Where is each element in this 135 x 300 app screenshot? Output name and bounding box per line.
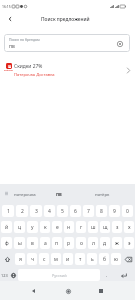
button[interactable]: ф xyxy=(1,237,12,249)
staticText: 16:15 xyxy=(2,4,11,9)
staticText: ц xyxy=(18,224,22,231)
button[interactable]: 8 xyxy=(96,205,107,217)
staticText: з xyxy=(116,224,119,231)
staticText: ПЯТЁРОЧКА xyxy=(4,69,14,71)
staticText: Скидки 27% xyxy=(14,63,43,70)
button[interactable]: 3 xyxy=(30,205,42,217)
staticText: 9 xyxy=(113,208,116,215)
button[interactable]: 1 xyxy=(2,205,14,217)
staticText: ш xyxy=(91,224,96,231)
button[interactable]: б xyxy=(99,253,109,265)
button[interactable]: 7 xyxy=(83,205,94,217)
staticText: б xyxy=(103,256,106,263)
staticText: м xyxy=(54,256,58,263)
staticText: 0 xyxy=(126,208,129,215)
button[interactable]: о xyxy=(76,237,86,249)
staticText: г xyxy=(80,224,83,231)
button[interactable]: Numbers xyxy=(0,267,9,283)
staticText: 5 xyxy=(61,208,64,215)
button[interactable]: п xyxy=(52,237,62,249)
staticText: пятёрк xyxy=(95,191,110,197)
button[interactable]: р xyxy=(64,237,74,249)
button[interactable]: пв xyxy=(38,184,79,203)
staticText: ы xyxy=(18,240,22,247)
staticText: е xyxy=(56,224,59,231)
staticText: й xyxy=(5,224,9,231)
staticText: 4 xyxy=(48,208,51,215)
button[interactable]: Keyboard menu xyxy=(0,184,12,203)
staticText: э xyxy=(128,240,131,247)
button[interactable]: Back xyxy=(1,10,18,27)
staticText: Поиск предложений xyxy=(41,16,90,23)
staticText: Русский xyxy=(52,273,67,278)
button[interactable]: ПЯТЁРОЧКА xyxy=(0,59,135,81)
button[interactable]: ц xyxy=(14,221,25,233)
staticText: пятерочка xyxy=(14,191,36,197)
staticText: 8 xyxy=(100,208,103,215)
staticText: л xyxy=(92,240,95,247)
button[interactable]: Поиск по брендам xyxy=(4,34,130,52)
staticText: п xyxy=(55,240,59,247)
button[interactable]: Recent apps xyxy=(93,283,109,299)
button[interactable]: 0 xyxy=(122,205,133,217)
button[interactable]: в xyxy=(27,237,38,249)
button[interactable]: ж xyxy=(112,237,122,249)
button[interactable]: ю xyxy=(111,253,121,265)
button[interactable]: Backspace xyxy=(122,251,135,267)
staticText: д xyxy=(103,240,107,247)
staticText: . xyxy=(106,272,108,278)
staticText: Поиск по брендам xyxy=(9,37,40,42)
staticText: пв xyxy=(9,43,15,50)
button[interactable]: Back xyxy=(25,283,41,299)
button[interactable]: д xyxy=(100,237,110,249)
button[interactable]: л xyxy=(88,237,98,249)
staticText: в xyxy=(31,240,34,247)
staticText: у xyxy=(31,224,34,231)
button[interactable]: н xyxy=(64,221,74,233)
staticText: 6 xyxy=(74,208,77,215)
button[interactable]: э xyxy=(124,237,134,249)
button[interactable]: Enter xyxy=(112,267,135,283)
button[interactable]: пятёрк xyxy=(79,184,125,203)
button[interactable]: ч xyxy=(27,253,37,265)
button[interactable]: й xyxy=(1,221,12,233)
staticText: пв xyxy=(56,191,62,197)
button[interactable]: 2 xyxy=(16,205,28,217)
button[interactable]: 5 xyxy=(57,205,68,217)
staticText: щ xyxy=(103,224,108,231)
staticText: р xyxy=(67,240,71,247)
button[interactable]: ь xyxy=(87,253,97,265)
button[interactable]: 4 xyxy=(44,205,55,217)
button[interactable]: х xyxy=(124,221,134,233)
button[interactable]: 6 xyxy=(70,205,81,217)
button[interactable]: т xyxy=(75,253,85,265)
staticText: х xyxy=(128,224,131,231)
button[interactable]: Period xyxy=(101,267,112,283)
button[interactable]: щ xyxy=(100,221,110,233)
button[interactable]: г xyxy=(76,221,86,233)
staticText: н xyxy=(67,224,71,231)
button[interactable]: е xyxy=(52,221,62,233)
staticText: к xyxy=(44,224,47,231)
button[interactable]: ы xyxy=(14,237,25,249)
staticText: 7 xyxy=(87,208,90,215)
button[interactable]: к xyxy=(40,221,50,233)
button[interactable]: я xyxy=(15,253,25,265)
button[interactable]: м xyxy=(51,253,61,265)
button[interactable]: у xyxy=(27,221,38,233)
staticText: я xyxy=(19,256,22,263)
staticText: ч xyxy=(31,256,34,263)
button[interactable]: Clear text xyxy=(115,39,124,48)
staticText: о xyxy=(80,240,83,247)
button[interactable]: и xyxy=(63,253,73,265)
button[interactable]: 9 xyxy=(109,205,120,217)
button[interactable]: с xyxy=(39,253,49,265)
button[interactable]: ш xyxy=(88,221,98,233)
button[interactable]: Change language xyxy=(9,267,17,283)
button[interactable]: Русский xyxy=(18,269,100,281)
button[interactable]: Home xyxy=(60,283,76,299)
button[interactable]: а xyxy=(40,237,50,249)
button[interactable]: з xyxy=(112,221,122,233)
button[interactable]: пятерочка xyxy=(12,184,38,203)
button[interactable]: Shift xyxy=(0,251,14,267)
